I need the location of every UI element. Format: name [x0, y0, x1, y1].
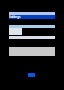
- button[interactable]: Settings: [9, 15, 55, 19]
- staticText: Settings: [9, 15, 21, 19]
